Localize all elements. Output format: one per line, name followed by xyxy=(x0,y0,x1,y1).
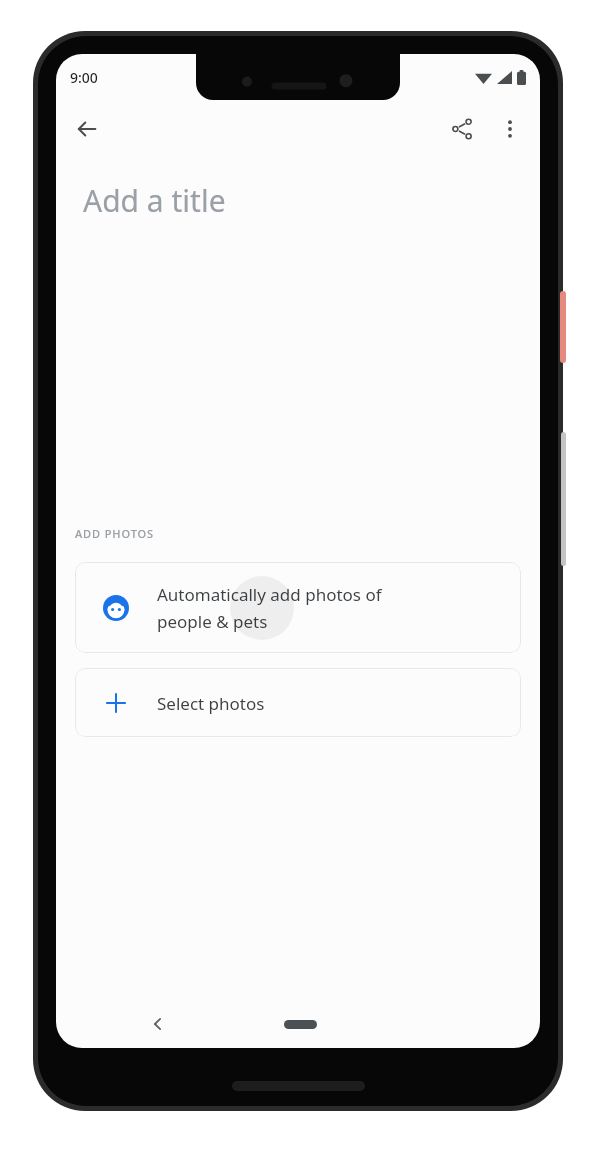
button[interactable]: Select photos xyxy=(75,668,521,737)
button[interactable]: Add a title xyxy=(56,158,540,242)
staticText: Select photos xyxy=(157,692,265,715)
button[interactable]: Back xyxy=(63,105,111,153)
button[interactable]: More options xyxy=(486,105,534,153)
button[interactable]: Automatically add photos of people & pet… xyxy=(75,562,521,653)
staticText: Automatically add photos of people & pet… xyxy=(157,583,382,633)
button[interactable]: Share xyxy=(438,105,486,153)
staticText: ADD PHOTOS xyxy=(75,526,155,541)
button[interactable]: Home xyxy=(272,1011,328,1037)
button[interactable]: Back xyxy=(138,1004,178,1044)
staticText: Add a title xyxy=(83,180,226,221)
staticText: 9:00 xyxy=(70,68,98,87)
